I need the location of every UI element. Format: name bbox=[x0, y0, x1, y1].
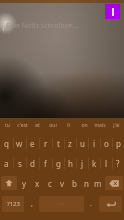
staticText: e bbox=[30, 138, 35, 149]
staticText: o bbox=[104, 138, 109, 149]
staticText: t bbox=[57, 138, 60, 149]
staticText: p bbox=[116, 138, 121, 149]
button[interactable]: m bbox=[92, 173, 104, 193]
staticText: n bbox=[84, 178, 89, 189]
button[interactable]: tu bbox=[0, 118, 15, 133]
button[interactable]: a bbox=[0, 153, 13, 173]
button[interactable]: c'est bbox=[15, 118, 30, 133]
button[interactable]: y bbox=[18, 173, 31, 193]
staticText: u bbox=[80, 138, 85, 149]
button[interactable]: s bbox=[13, 153, 26, 173]
button[interactable]: h bbox=[64, 153, 76, 173]
button[interactable]: l bbox=[100, 153, 112, 173]
button[interactable]: n bbox=[80, 173, 92, 193]
staticText: g bbox=[56, 158, 61, 169]
button[interactable]: t bbox=[52, 133, 64, 153]
staticText: d bbox=[30, 158, 35, 169]
staticText: Eine Notiz schreiben… bbox=[6, 21, 79, 31]
button[interactable]: il bbox=[60, 118, 76, 133]
staticText: j bbox=[81, 158, 84, 169]
staticText: q bbox=[4, 138, 9, 149]
button[interactable]: p bbox=[112, 133, 124, 153]
staticText: m bbox=[94, 178, 102, 189]
button[interactable]: o bbox=[100, 133, 112, 153]
button[interactable]: f bbox=[39, 153, 52, 173]
staticText: m bbox=[59, 200, 65, 208]
staticText: oui bbox=[49, 122, 57, 129]
staticText: il bbox=[67, 122, 70, 129]
button[interactable]: q bbox=[0, 133, 13, 153]
button[interactable]: Enter bbox=[99, 196, 122, 212]
button[interactable]: Backspace bbox=[105, 176, 123, 190]
staticText: l bbox=[105, 158, 108, 169]
staticText: b bbox=[72, 178, 77, 189]
button[interactable]: et bbox=[30, 118, 45, 133]
button[interactable]: c bbox=[44, 173, 56, 193]
staticText: j'ai bbox=[113, 122, 120, 129]
button[interactable]: Comma bbox=[26, 196, 38, 212]
staticText: h bbox=[68, 158, 73, 169]
staticText: tu bbox=[5, 122, 10, 129]
button[interactable]: Send note bbox=[105, 4, 120, 19]
staticText: s bbox=[18, 158, 22, 169]
staticText: i bbox=[93, 138, 96, 149]
staticText: z bbox=[68, 138, 72, 149]
staticText: w bbox=[16, 138, 23, 149]
button[interactable]: ?123 bbox=[2, 196, 24, 212]
button[interactable]: v bbox=[56, 173, 68, 193]
staticText: . bbox=[90, 199, 92, 209]
button[interactable]: oui bbox=[45, 118, 60, 133]
button[interactable]: w bbox=[13, 133, 26, 153]
staticText: v bbox=[60, 178, 65, 189]
staticText: on bbox=[81, 122, 88, 129]
staticText: c bbox=[48, 178, 52, 189]
button[interactable]: r bbox=[39, 133, 52, 153]
staticText: k bbox=[92, 158, 97, 169]
button[interactable]: k bbox=[88, 153, 100, 173]
button[interactable]: d bbox=[26, 153, 39, 173]
staticText: y bbox=[22, 178, 27, 189]
button[interactable]: mais bbox=[92, 118, 108, 133]
staticText: a bbox=[4, 158, 9, 169]
staticText: r bbox=[44, 138, 48, 149]
staticText: et bbox=[35, 122, 40, 129]
button[interactable]: on bbox=[76, 118, 92, 133]
button[interactable]: g bbox=[52, 153, 64, 173]
staticText: ? bbox=[116, 158, 120, 169]
button[interactable]: Eine Notiz schreiben… bbox=[0, 20, 124, 32]
button[interactable]: u bbox=[76, 133, 88, 153]
staticText: c'est bbox=[17, 122, 28, 129]
button[interactable]: i bbox=[88, 133, 100, 153]
button[interactable]: z bbox=[64, 133, 76, 153]
staticText: f bbox=[44, 158, 47, 169]
staticText: mais bbox=[94, 122, 106, 129]
button[interactable]: Shift bbox=[1, 176, 17, 190]
button[interactable]: x bbox=[31, 173, 44, 193]
button[interactable]: j bbox=[76, 153, 88, 173]
button[interactable]: j'ai bbox=[108, 118, 124, 133]
staticText: ?123 bbox=[7, 200, 20, 208]
staticText: , bbox=[31, 199, 33, 209]
button[interactable]: Period bbox=[85, 196, 97, 212]
button[interactable]: b bbox=[68, 173, 80, 193]
button[interactable]: ? bbox=[112, 153, 124, 173]
button[interactable]: e bbox=[26, 133, 39, 153]
staticText: x bbox=[35, 178, 40, 189]
